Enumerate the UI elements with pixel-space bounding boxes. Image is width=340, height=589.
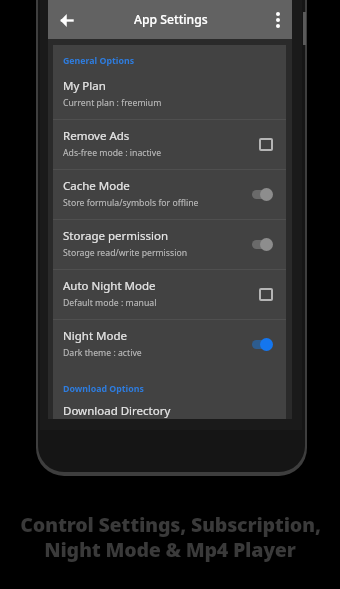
staticText: Ads-free mode : inactive [63, 147, 162, 159]
staticText: Auto Night Mode [63, 278, 156, 294]
button[interactable]: Download Directory [53, 398, 286, 419]
button[interactable]: More options [266, 8, 290, 32]
staticText: Download Options [63, 383, 144, 395]
staticText: Storage permission [63, 228, 169, 244]
staticText: Remove Ads [63, 128, 130, 144]
button[interactable]: Night Mode [53, 320, 286, 369]
staticText: Cache Mode [63, 178, 130, 194]
button[interactable]: Storage permission [53, 220, 286, 269]
button[interactable]: Cache Mode [53, 170, 286, 219]
staticText: Store formula/symbols for offline [63, 197, 199, 209]
staticText: Control Settings, Subscription, [20, 511, 321, 538]
button[interactable]: Remove Ads [53, 120, 286, 169]
staticText: Storage read/write permission [63, 247, 188, 259]
button[interactable]: My Plan [53, 70, 286, 119]
staticText: General Options [63, 55, 135, 67]
staticText: Download Directory [63, 403, 171, 419]
button[interactable]: Back [53, 6, 81, 34]
staticText: Current plan : freemium [63, 97, 162, 109]
staticText: Dark theme : active [63, 347, 142, 359]
staticText: Default mode : manual [63, 297, 157, 309]
staticText: Night Mode & Mp4 Player [44, 536, 296, 563]
staticText: Night Mode [63, 328, 127, 344]
button[interactable]: Auto Night Mode [53, 270, 286, 319]
staticText: App Settings [134, 11, 208, 28]
staticText: My Plan [63, 78, 106, 94]
